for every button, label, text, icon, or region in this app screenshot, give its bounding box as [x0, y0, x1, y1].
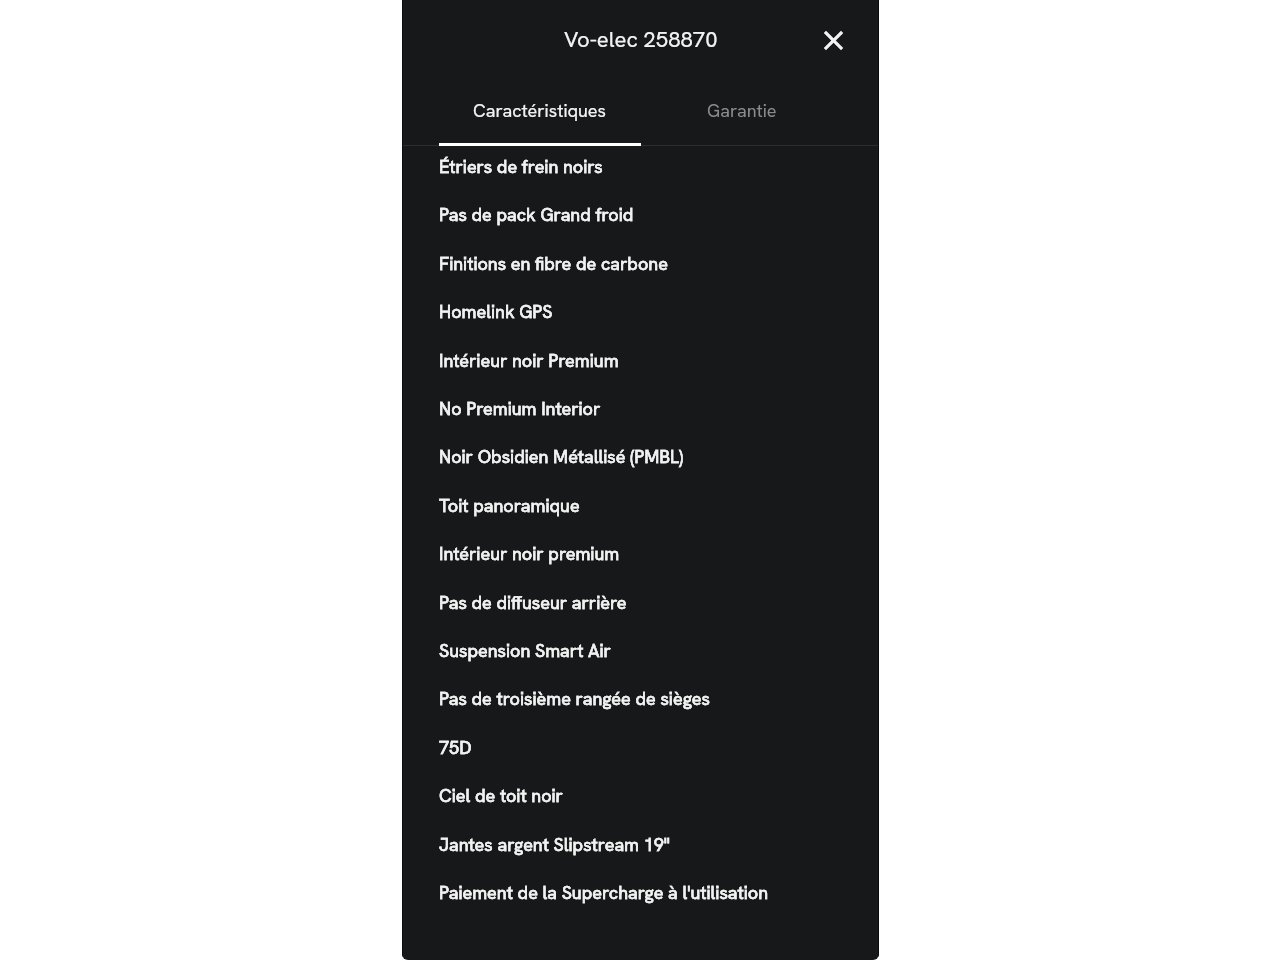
- staticText: Pas de diffuseur arrière: [439, 591, 627, 614]
- staticText: Pas de troisième rangée de sièges: [439, 687, 710, 710]
- staticText: Garantie: [707, 99, 777, 122]
- staticText: Noir Obsidien Métallisé (PMBL): [439, 445, 684, 468]
- staticText: Pas de pack Grand froid: [439, 203, 634, 226]
- button[interactable]: Intérieur noir premium: [402, 529, 879, 577]
- staticText: No Premium Interior: [439, 397, 601, 420]
- button[interactable]: Paiement de la Supercharge à l'utilisati…: [402, 868, 879, 916]
- staticText: Toit panoramique: [439, 494, 580, 517]
- button[interactable]: Caractéristiques: [402, 80, 678, 146]
- staticText: Paiement de la Supercharge à l'utilisati…: [439, 881, 769, 904]
- button[interactable]: Pas de pack Grand froid: [402, 190, 879, 238]
- button[interactable]: Pas de diffuseur arrière: [402, 578, 879, 626]
- button[interactable]: Intérieur noir Premium: [402, 336, 879, 384]
- button[interactable]: Jantes argent Slipstream 19": [402, 820, 879, 868]
- button[interactable]: 75D: [402, 723, 879, 771]
- staticText: Jantes argent Slipstream 19": [439, 833, 670, 856]
- staticText: Ciel de toit noir: [439, 784, 563, 807]
- button[interactable]: Finitions en fibre de carbone: [402, 239, 879, 287]
- staticText: Finitions en fibre de carbone: [439, 252, 668, 275]
- button[interactable]: Suspension Smart Air: [402, 626, 879, 674]
- button[interactable]: Toit panoramique: [402, 481, 879, 529]
- button[interactable]: Noir Obsidien Métallisé (PMBL): [402, 432, 879, 480]
- staticText: Intérieur noir premium: [439, 542, 620, 565]
- button[interactable]: Homelink GPS: [402, 287, 879, 335]
- staticText: Étriers de frein noirs: [439, 155, 603, 178]
- staticText: Intérieur noir Premium: [439, 349, 619, 372]
- staticText: Homelink GPS: [439, 300, 553, 323]
- button[interactable]: Close: [813, 20, 853, 60]
- staticText: Suspension Smart Air: [439, 639, 611, 662]
- button[interactable]: No Premium Interior: [402, 384, 879, 432]
- button[interactable]: Ciel de toit noir: [402, 771, 879, 819]
- button[interactable]: Garantie: [678, 80, 806, 146]
- button[interactable]: Pas de troisième rangée de sièges: [402, 674, 879, 722]
- button[interactable]: Étriers de frein noirs: [402, 142, 879, 190]
- staticText: Vo-elec 258870: [564, 25, 718, 54]
- staticText: 75D: [439, 736, 472, 759]
- staticText: Caractéristiques: [473, 99, 607, 122]
